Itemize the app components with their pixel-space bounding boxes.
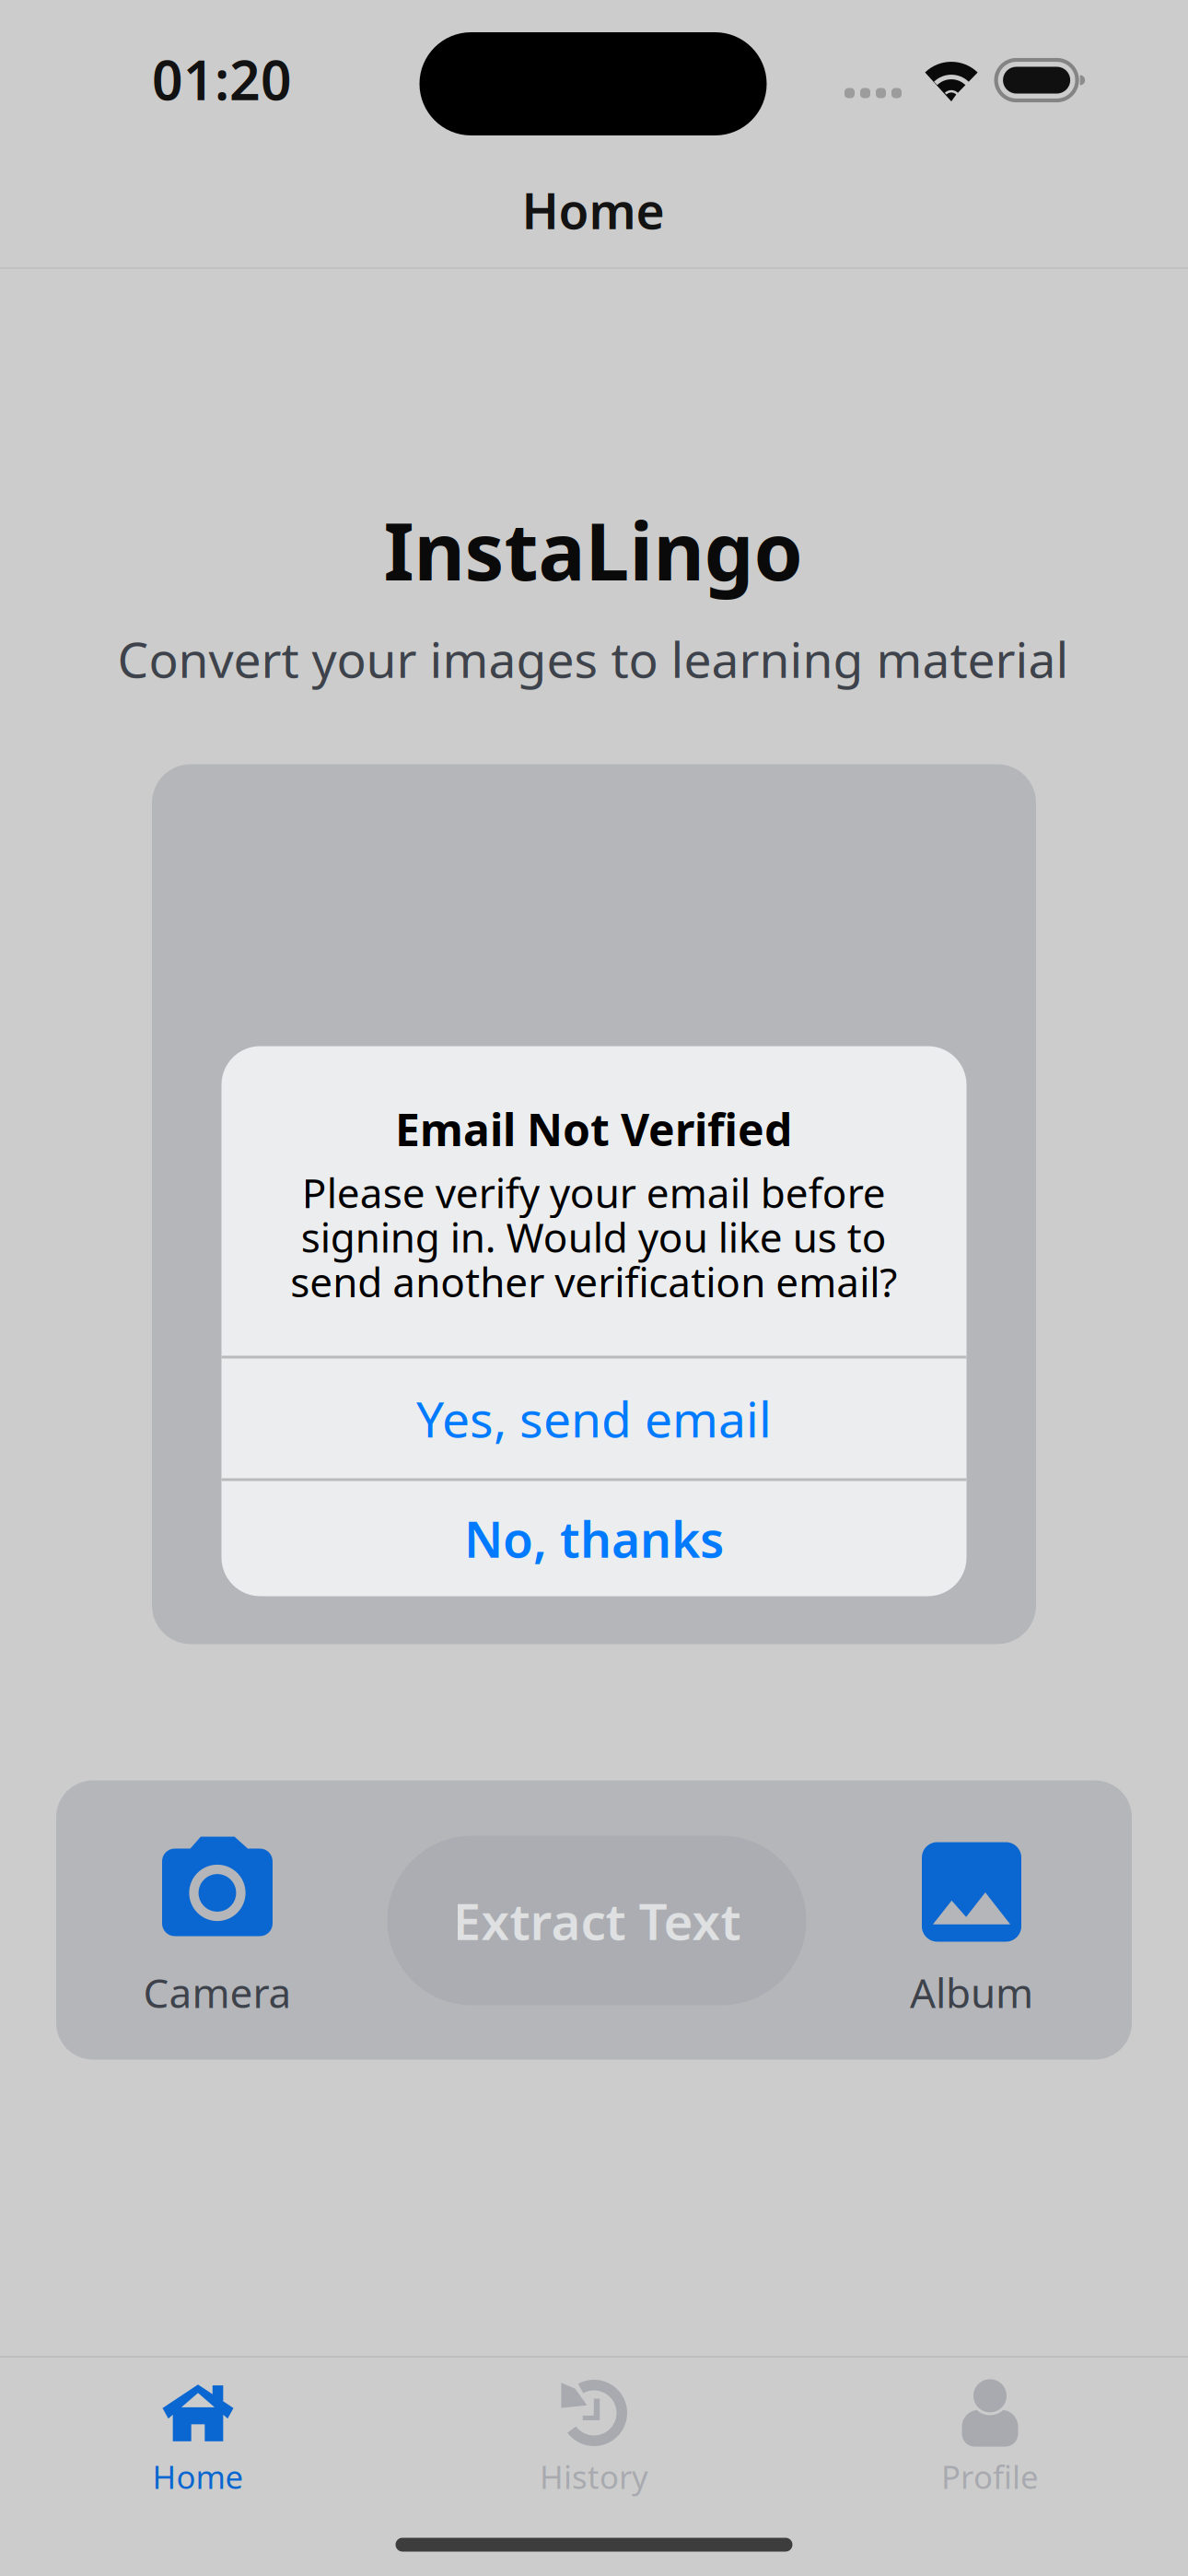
staticText: Convert your images to learning material [117,626,1069,691]
staticText: InstaLingo [384,498,803,602]
staticText: History [540,2455,648,2498]
button[interactable]: Home [0,2359,396,2515]
button[interactable]: History [396,2359,792,2515]
staticText: No, thanks [464,1506,724,1571]
staticText: Home [152,2455,244,2498]
staticText: Profile [941,2455,1039,2498]
staticText: Please verify your email before signing … [290,1165,897,1308]
staticText: Email Not Verified [395,1100,792,1158]
staticText: Album [910,1965,1033,2019]
staticText: Yes, send email [416,1386,772,1451]
button[interactable]: Camera [56,1780,1132,2060]
button[interactable]: Extract Text [387,1836,806,2005]
button[interactable]: Profile [792,2359,1188,2515]
staticText: Home [522,177,664,243]
staticText: Camera [143,1965,291,2019]
button[interactable]: No, thanks [221,1481,967,1596]
button[interactable]: Yes, send email [221,1358,967,1478]
staticText: Extract Text [453,1887,741,1954]
button[interactable]: Album [56,1780,1132,2060]
staticText: 01:20 [152,43,292,115]
